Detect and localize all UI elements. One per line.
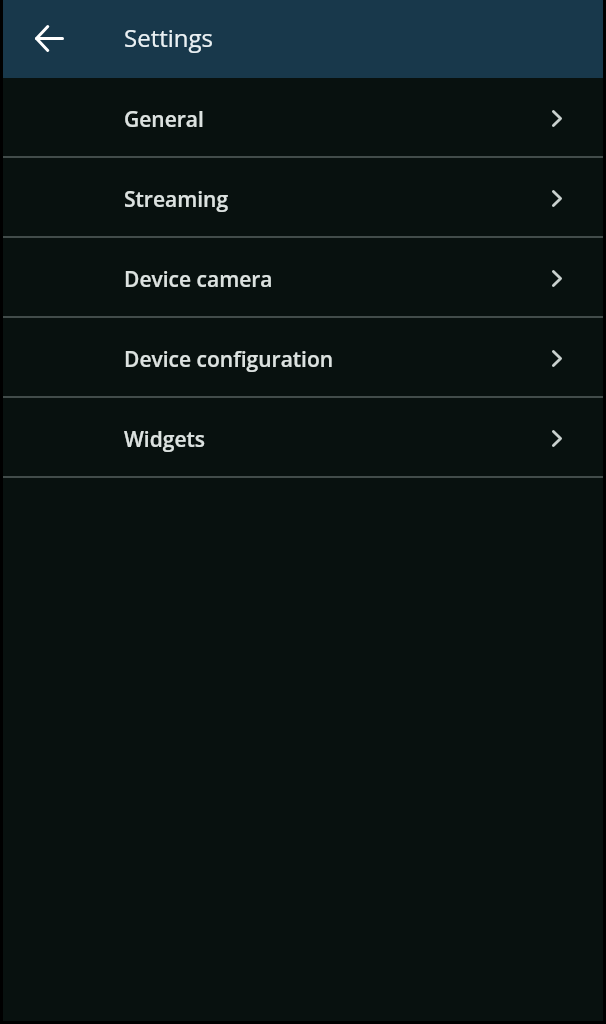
staticText: Device camera [124,265,273,294]
staticText: Device configuration [124,345,334,374]
button[interactable]: Device configuration [3,318,603,398]
button[interactable]: Back [21,0,77,77]
button[interactable]: General [3,78,603,158]
button[interactable]: Widgets [3,398,603,478]
staticText: Widgets [124,425,206,454]
staticText: Streaming [124,185,229,214]
button[interactable]: Device camera [3,238,603,318]
staticText: General [124,105,204,134]
button[interactable]: Streaming [3,158,603,238]
staticText: Settings [124,21,213,54]
